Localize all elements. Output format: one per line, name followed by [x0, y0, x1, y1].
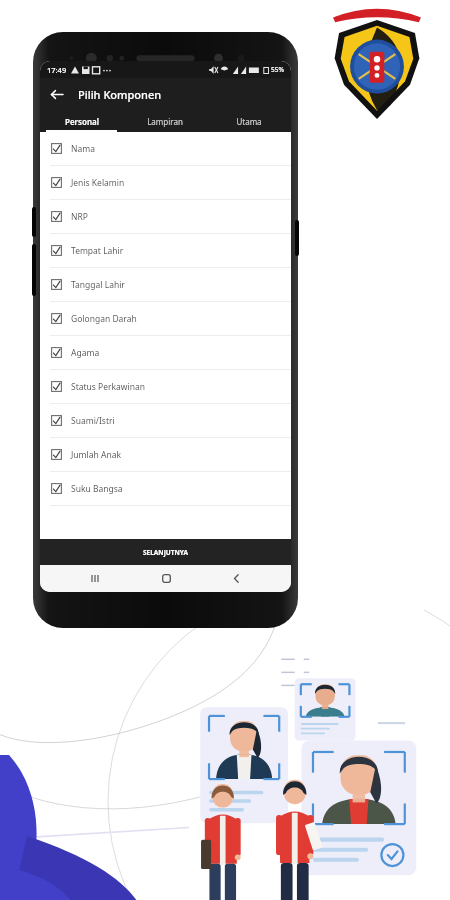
- staticText: Suami/Istri: [71, 415, 115, 427]
- staticText: Tanggal Lahir: [71, 279, 125, 291]
- staticText: SELANJUTNYA: [143, 548, 188, 557]
- staticText: Agama: [71, 347, 100, 359]
- button[interactable]: Back: [221, 565, 251, 592]
- button[interactable]: Back: [40, 78, 72, 110]
- staticText: NRP: [71, 211, 88, 223]
- staticText: 55%: [271, 65, 284, 74]
- button[interactable]: Suami/Istri: [40, 404, 291, 438]
- button[interactable]: Jenis Kelamin: [40, 166, 291, 200]
- button[interactable]: Lampiran: [123, 110, 207, 132]
- staticText: Nama: [71, 143, 95, 155]
- staticText: Jenis Kelamin: [71, 177, 125, 189]
- staticText: Utama: [236, 116, 262, 127]
- button[interactable]: Home: [151, 565, 181, 592]
- button[interactable]: Suku Bangsa: [40, 472, 291, 506]
- staticText: Golongan Darah: [71, 313, 137, 325]
- staticText: Lampiran: [147, 116, 183, 127]
- button[interactable]: Tanggal Lahir: [40, 268, 291, 302]
- staticText: Jumlah Anak: [71, 449, 121, 461]
- staticText: Tempat Lahir: [71, 245, 124, 257]
- button[interactable]: Status Perkawinan: [40, 370, 291, 404]
- button[interactable]: Recents: [80, 565, 110, 592]
- button[interactable]: SELANJUTNYA: [40, 539, 291, 565]
- button[interactable]: NRP: [40, 200, 291, 234]
- button[interactable]: Personal: [40, 110, 123, 132]
- button[interactable]: Agama: [40, 336, 291, 370]
- staticText: Suku Bangsa: [71, 483, 123, 495]
- button[interactable]: Jumlah Anak: [40, 438, 291, 472]
- staticText: 17:49: [47, 65, 67, 75]
- staticText: Personal: [65, 116, 99, 127]
- button[interactable]: Golongan Darah: [40, 302, 291, 336]
- button[interactable]: Nama: [40, 132, 291, 166]
- staticText: Status Perkawinan: [71, 381, 146, 393]
- button[interactable]: Utama: [207, 110, 291, 132]
- staticText: Pilih Komponen: [78, 87, 162, 102]
- button[interactable]: Tempat Lahir: [40, 234, 291, 268]
